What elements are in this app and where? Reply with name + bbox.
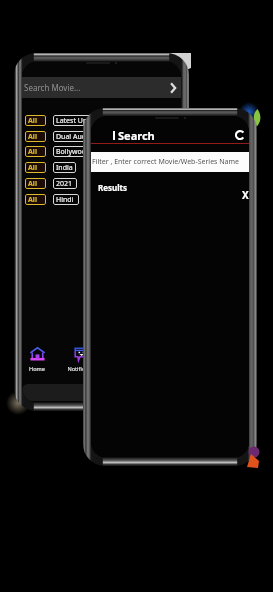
button[interactable]: Back bbox=[112, 130, 116, 141]
staticText: Home bbox=[29, 365, 45, 373]
button[interactable]: Filter , Enter correct Movie/Web-Series … bbox=[91, 152, 249, 172]
button[interactable]: All bbox=[25, 131, 46, 142]
button[interactable]: Home bbox=[22, 346, 52, 373]
staticText: X bbox=[242, 188, 249, 201]
button[interactable]: Notification bbox=[66, 346, 96, 373]
staticText: Filter , Enter correct Movie/Web-Series … bbox=[92, 157, 240, 167]
button[interactable]: Hindi bbox=[53, 194, 79, 205]
button[interactable]: All bbox=[25, 162, 46, 173]
staticText: Dual Audi bbox=[56, 132, 88, 142]
staticText: Bollywood bbox=[56, 147, 91, 157]
button[interactable]: All bbox=[25, 194, 46, 205]
staticText: All bbox=[28, 195, 38, 205]
button[interactable]: All bbox=[25, 178, 46, 189]
staticText: India bbox=[56, 163, 73, 173]
staticText: Search Movie... bbox=[24, 82, 81, 93]
staticText: All bbox=[28, 179, 38, 189]
staticText: Hindi bbox=[56, 195, 74, 205]
button[interactable]: All bbox=[25, 146, 46, 157]
staticText: All bbox=[28, 116, 38, 126]
button[interactable]: 2021 bbox=[53, 178, 77, 189]
button[interactable]: All bbox=[25, 115, 46, 126]
staticText: All bbox=[28, 132, 38, 142]
button[interactable]: Close bbox=[239, 188, 249, 201]
button[interactable]: Bollywood bbox=[53, 146, 115, 157]
staticText: 2021 bbox=[56, 179, 73, 189]
button[interactable]: Dual Audi bbox=[53, 131, 111, 142]
button[interactable]: India bbox=[53, 162, 76, 173]
button[interactable]: Search Movie... bbox=[22, 77, 181, 98]
staticText: Results bbox=[98, 182, 128, 193]
staticText: Latest Upd bbox=[56, 116, 92, 126]
staticText: Notification bbox=[66, 365, 96, 373]
staticText: All bbox=[28, 147, 38, 157]
button[interactable]: Latest Upd bbox=[53, 115, 115, 126]
staticText: Search bbox=[118, 128, 155, 143]
staticText: All bbox=[28, 163, 38, 173]
button[interactable]: Refresh bbox=[233, 128, 247, 142]
